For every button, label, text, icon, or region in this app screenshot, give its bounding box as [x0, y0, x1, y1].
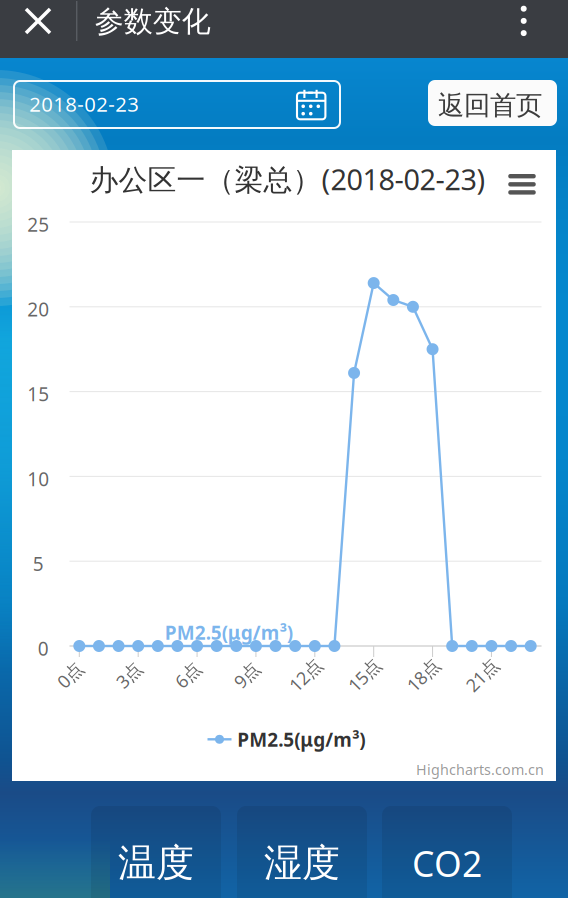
- staticText: 2018-02-23: [29, 90, 139, 118]
- staticText: 15: [27, 381, 49, 407]
- button[interactable]: CO2: [382, 806, 512, 898]
- staticText: PM2.5(μg/m³): [165, 620, 293, 645]
- staticText: 18点: [404, 663, 442, 687]
- staticText: 返回首页: [438, 89, 542, 122]
- button[interactable]: 湿度: [237, 806, 367, 898]
- staticText: 3点: [115, 663, 143, 687]
- staticText: 0点: [56, 663, 84, 687]
- staticText: 参数变化: [95, 3, 211, 40]
- staticText: Highcharts.com.cn: [416, 760, 544, 779]
- staticText: CO2: [412, 839, 482, 887]
- button[interactable]: 2018-02-23: [14, 81, 340, 128]
- button[interactable]: Close: [9, 0, 67, 43]
- staticText: 25: [27, 211, 49, 237]
- button[interactable]: More options: [502, 0, 546, 43]
- staticText: 5: [33, 551, 44, 577]
- staticText: 湿度: [264, 839, 340, 887]
- staticText: 12点: [286, 663, 324, 687]
- button[interactable]: 返回首页: [428, 80, 557, 126]
- button[interactable]: Chart menu: [500, 164, 544, 204]
- staticText: 10: [27, 466, 49, 492]
- staticText: 办公区一（梁总）(2018-02-23): [90, 159, 486, 199]
- button[interactable]: 温度: [91, 806, 221, 898]
- staticText: PM2.5(μg/m³): [237, 727, 365, 752]
- staticText: 0: [38, 635, 49, 661]
- staticText: 9点: [233, 663, 261, 687]
- staticText: 20: [27, 296, 49, 322]
- staticText: 21点: [463, 663, 501, 687]
- staticText: 温度: [118, 839, 194, 887]
- staticText: 6点: [174, 663, 202, 687]
- staticText: 15点: [345, 663, 383, 687]
